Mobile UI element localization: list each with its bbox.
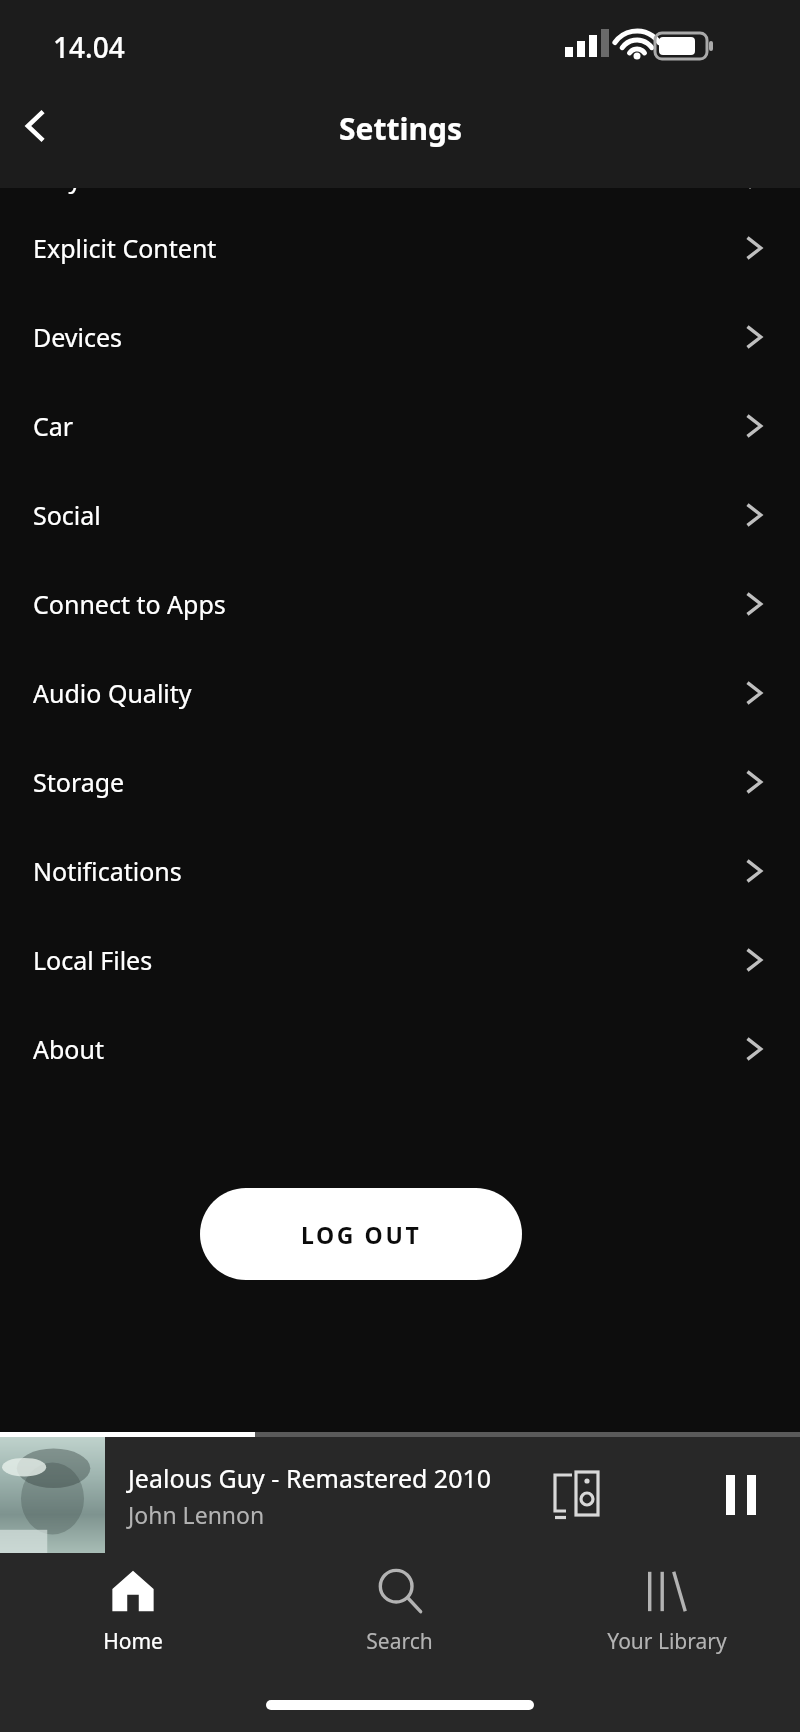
staticText: 14.04	[53, 28, 125, 66]
button[interactable]: Jealous Guy - Remastered 2010	[0, 1437, 800, 1553]
staticText: Jealous Guy - Remastered 2010	[128, 1461, 492, 1495]
button[interactable]: About	[0, 1004, 800, 1093]
staticText: Local Files	[33, 943, 153, 977]
staticText: Storage	[33, 765, 125, 799]
button[interactable]: Pause	[706, 1459, 778, 1531]
button[interactable]: Car	[0, 381, 800, 470]
staticText: Playback	[33, 161, 137, 195]
button[interactable]: LOG OUT	[200, 1188, 522, 1280]
button[interactable]: Connect to a device	[538, 1457, 614, 1533]
staticText: Connect to Apps	[33, 587, 226, 621]
staticText: Devices	[33, 320, 123, 354]
staticText: Home	[103, 1627, 163, 1656]
button[interactable]: Social	[0, 470, 800, 559]
staticText: About	[33, 1032, 104, 1066]
staticText: Audio Quality	[33, 676, 192, 710]
button[interactable]: Explicit Content	[0, 203, 800, 292]
staticText: Your Library	[607, 1627, 727, 1656]
staticText: Car	[33, 409, 74, 443]
button[interactable]: Connect to Apps	[0, 559, 800, 648]
button[interactable]: Local Files	[0, 915, 800, 1004]
button[interactable]: Audio Quality	[0, 648, 800, 737]
button[interactable]: Search	[266, 1567, 533, 1732]
staticText: John Lennon	[128, 1499, 265, 1530]
button[interactable]: Playback	[0, 155, 800, 200]
button[interactable]: Your Library	[533, 1567, 800, 1732]
button[interactable]: Storage	[0, 737, 800, 826]
staticText: Search	[366, 1627, 433, 1656]
button[interactable]: Home	[0, 1567, 266, 1732]
staticText: Social	[33, 498, 101, 532]
button[interactable]: Back	[0, 90, 72, 162]
staticText: Explicit Content	[33, 231, 217, 265]
staticText: Settings	[339, 108, 462, 149]
button[interactable]: Notifications	[0, 826, 800, 915]
staticText: LOG OUT	[301, 1219, 422, 1250]
staticText: Notifications	[33, 854, 182, 888]
button[interactable]: Devices	[0, 292, 800, 381]
